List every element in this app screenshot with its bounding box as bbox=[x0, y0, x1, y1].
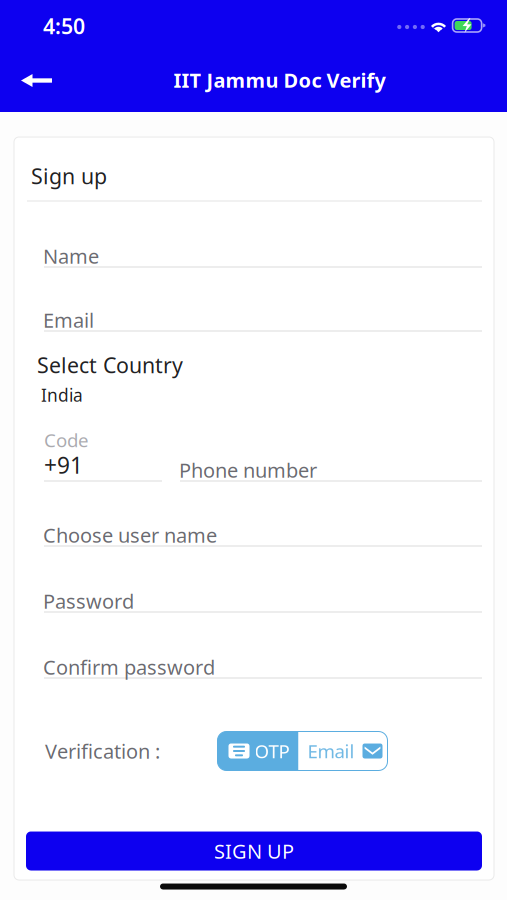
staticText: OTP bbox=[254, 739, 289, 763]
button[interactable]: OTP bbox=[217, 731, 298, 770]
staticText: Confirm password bbox=[43, 654, 215, 680]
staticText: Choose user name bbox=[43, 522, 217, 548]
staticText: Email bbox=[307, 739, 354, 763]
staticText: Code bbox=[44, 428, 89, 452]
staticText: Select Country bbox=[37, 351, 183, 379]
staticText: Password bbox=[43, 588, 134, 614]
staticText: India bbox=[41, 383, 83, 406]
button[interactable]: Email bbox=[298, 731, 387, 770]
staticText: Name bbox=[43, 243, 99, 269]
staticText: 4:50 bbox=[43, 12, 85, 40]
button[interactable]: SIGN UP bbox=[26, 831, 482, 870]
button[interactable]: Back bbox=[10, 58, 62, 102]
staticText: IIT Jammu Doc Verify bbox=[173, 67, 385, 93]
staticText: +91 bbox=[44, 450, 83, 480]
staticText: Sign up bbox=[31, 162, 107, 190]
staticText: SIGN UP bbox=[214, 838, 294, 864]
staticText: Phone number bbox=[179, 457, 317, 483]
staticText: Email bbox=[43, 307, 94, 333]
staticText: Verification : bbox=[45, 738, 160, 764]
